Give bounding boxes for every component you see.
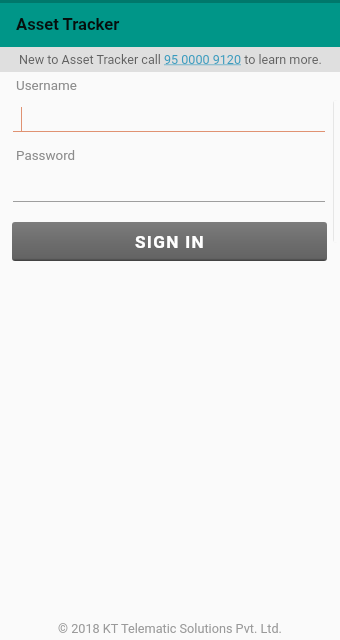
button[interactable]: Asset Tracker	[0, 0, 340, 47]
staticText: Asset Tracker	[16, 15, 120, 34]
staticText: Username	[16, 78, 77, 94]
button[interactable]: Password	[13, 144, 325, 202]
staticText: © 2018 KT Telematic Solutions Pvt. Ltd.	[0, 621, 340, 636]
button[interactable]: Username	[13, 74, 325, 132]
staticText: New to Asset Tracker call 95 0000 9120 t…	[19, 52, 322, 67]
staticText: SIGN IN	[135, 232, 205, 252]
button[interactable]: SIGN IN	[12, 222, 327, 261]
button[interactable]: New to Asset Tracker call 95 0000 9120 t…	[0, 47, 340, 72]
staticText: Password	[16, 148, 76, 164]
